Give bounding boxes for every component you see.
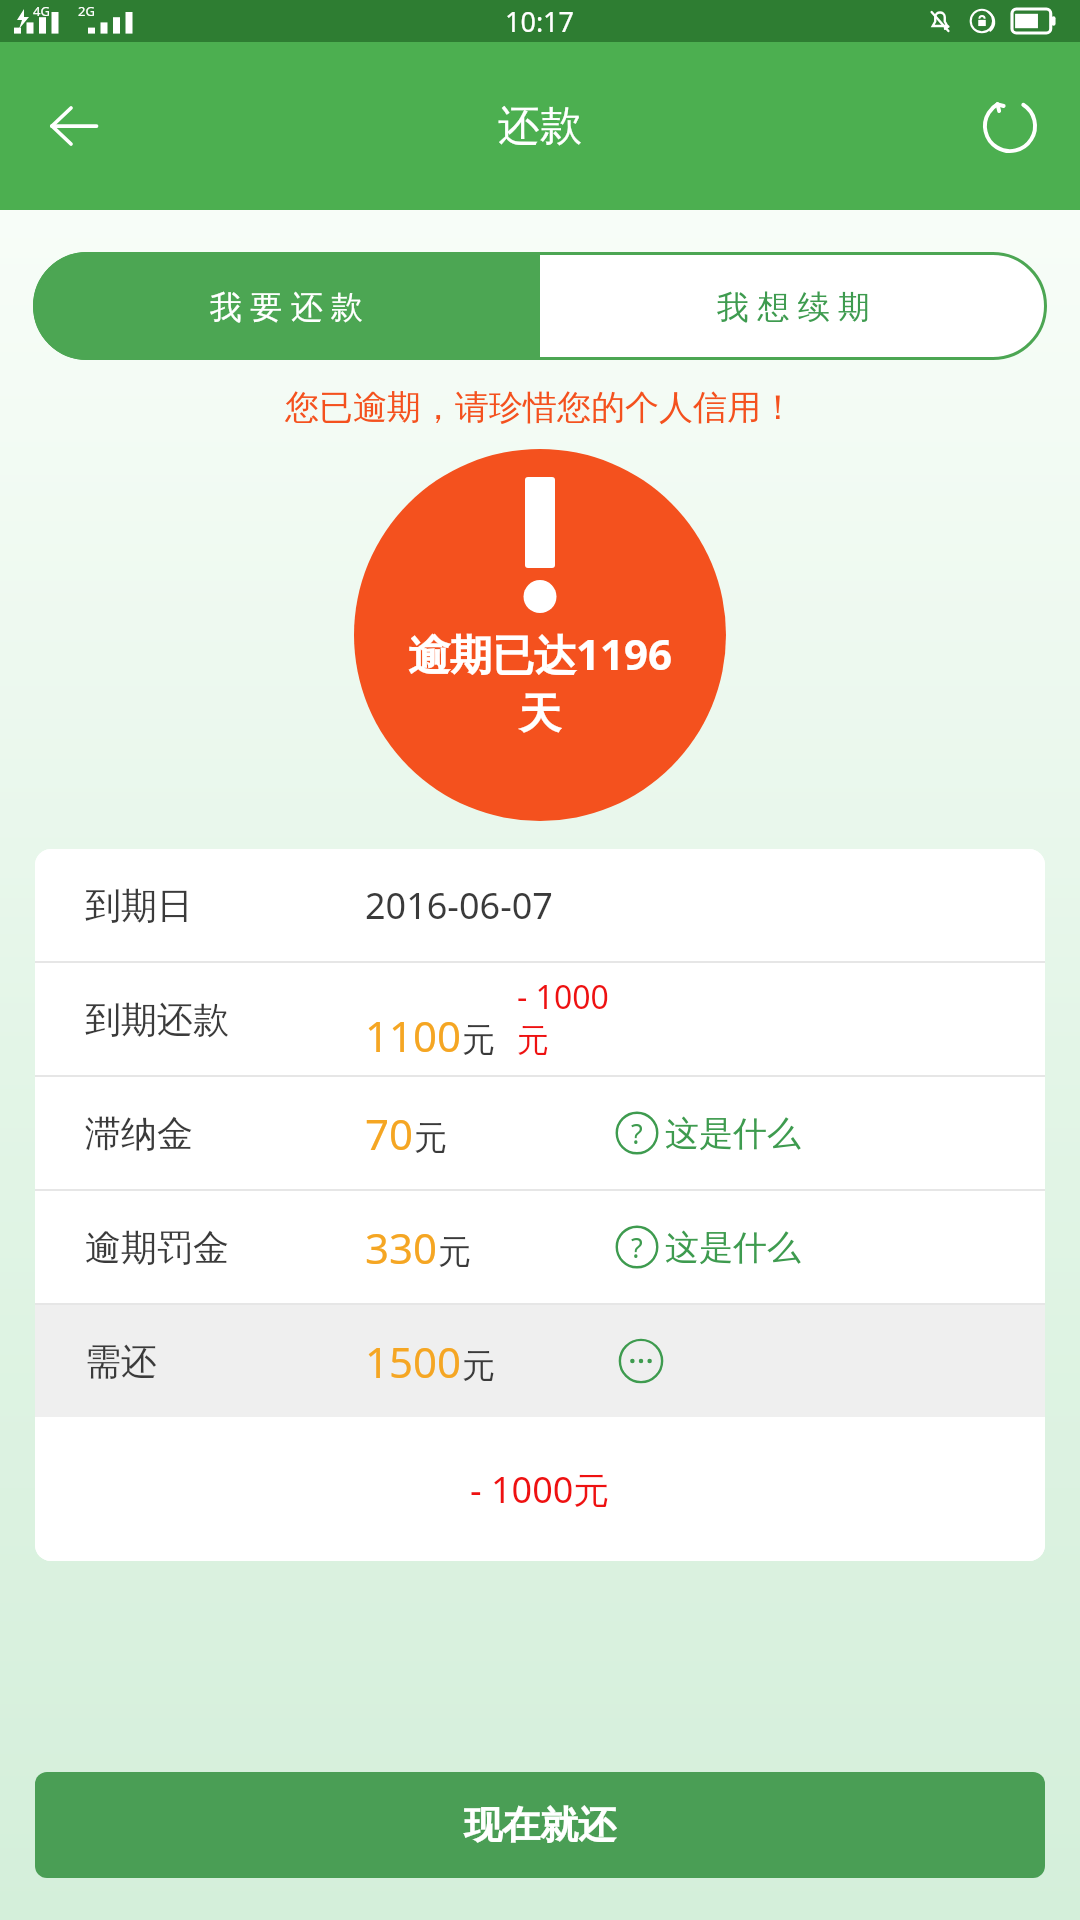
staticText: 需还 bbox=[85, 1339, 157, 1384]
button[interactable]: ? bbox=[615, 1225, 801, 1269]
staticText: 70 bbox=[365, 1105, 414, 1162]
staticText: 还款 bbox=[498, 100, 582, 153]
staticText: 2G bbox=[78, 2, 95, 20]
button[interactable]: Back bbox=[32, 84, 116, 168]
button[interactable]: 逾期罚金 bbox=[35, 1191, 1045, 1303]
button[interactable]: 需还 bbox=[35, 1305, 1045, 1417]
staticText: 现在就还 bbox=[464, 1801, 616, 1849]
staticText: 这是什么 bbox=[665, 1112, 801, 1155]
staticText: 元 bbox=[462, 1019, 495, 1061]
staticText: 元 bbox=[438, 1231, 471, 1273]
staticText: 10:17 bbox=[505, 3, 575, 40]
button[interactable]: More bbox=[615, 1335, 667, 1387]
staticText: 我 想 续 期 bbox=[717, 284, 870, 328]
button[interactable]: 我 要 还 款 bbox=[33, 252, 540, 360]
button[interactable]: 到期日 bbox=[35, 849, 1045, 961]
staticText: 天 bbox=[519, 688, 561, 741]
staticText: 逾期已达1196 bbox=[408, 625, 673, 682]
staticText: 到期还款 bbox=[85, 997, 229, 1042]
staticText: - 1000元 bbox=[470, 1465, 610, 1514]
staticText: 元 bbox=[462, 1345, 495, 1387]
staticText: 这是什么 bbox=[665, 1226, 801, 1269]
staticText: 我 要 还 款 bbox=[210, 284, 363, 328]
staticText: 1100 bbox=[365, 1007, 462, 1064]
staticText: 2016-06-07 bbox=[365, 881, 553, 930]
staticText: 1500 bbox=[365, 1333, 462, 1390]
staticText: 330 bbox=[365, 1219, 438, 1276]
button[interactable]: 到期还款 bbox=[35, 963, 1045, 1075]
staticText: 您已逾期，请珍惜您的个人信用！ bbox=[285, 386, 795, 429]
staticText: ? bbox=[631, 1229, 643, 1266]
button[interactable]: Refresh bbox=[968, 84, 1052, 168]
staticText: 到期日 bbox=[85, 883, 193, 928]
staticText: ? bbox=[631, 1115, 643, 1152]
staticText: 4G bbox=[33, 2, 50, 20]
button[interactable]: 我 想 续 期 bbox=[540, 252, 1047, 360]
button[interactable]: 滞纳金 bbox=[35, 1077, 1045, 1189]
staticText: - 1000元 bbox=[517, 975, 615, 1061]
staticText: 滞纳金 bbox=[85, 1111, 193, 1156]
button[interactable]: 现在就还 bbox=[35, 1772, 1045, 1878]
staticText: 逾期罚金 bbox=[85, 1225, 229, 1270]
staticText: 元 bbox=[414, 1117, 447, 1159]
button[interactable]: ? bbox=[615, 1111, 801, 1155]
